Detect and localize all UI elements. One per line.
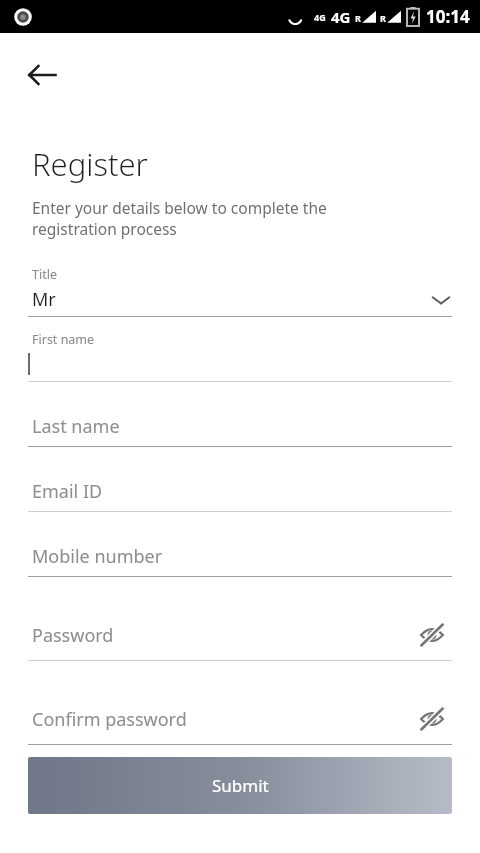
button[interactable]: Submit [28,757,452,814]
button[interactable]: Last name [0,382,480,447]
staticText: Submit [212,774,269,797]
staticText: 10:14 [426,5,470,28]
button[interactable]: Mobile number [0,512,480,577]
staticText: 4G [331,7,351,27]
staticText: Last name [32,414,120,439]
staticText: First name [32,331,95,348]
staticText: Mr [32,287,430,312]
staticText: R [355,12,361,24]
button[interactable]: First name [0,317,480,382]
staticText: 4G [314,11,326,23]
button[interactable]: Confirm password [28,703,412,736]
staticText: Mobile number [32,544,163,569]
button[interactable]: Password [28,619,412,652]
staticText: Title [32,266,57,283]
button[interactable]: Back [14,47,70,103]
button[interactable]: Show password [412,699,452,739]
button[interactable]: Title [0,266,480,317]
staticText: R [380,12,386,24]
staticText: Register [32,143,148,185]
button[interactable]: Show password [412,615,452,655]
button[interactable]: Email ID [0,447,480,512]
staticText: Enter your details below to complete the… [32,197,327,240]
staticText: Email ID [32,479,103,504]
